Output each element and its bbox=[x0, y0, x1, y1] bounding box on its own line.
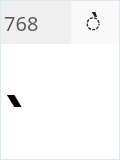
staticText: 768 bbox=[4, 10, 39, 37]
button[interactable]: 768 bbox=[1, 1, 71, 44]
button[interactable]: Refresh bbox=[80, 9, 106, 35]
